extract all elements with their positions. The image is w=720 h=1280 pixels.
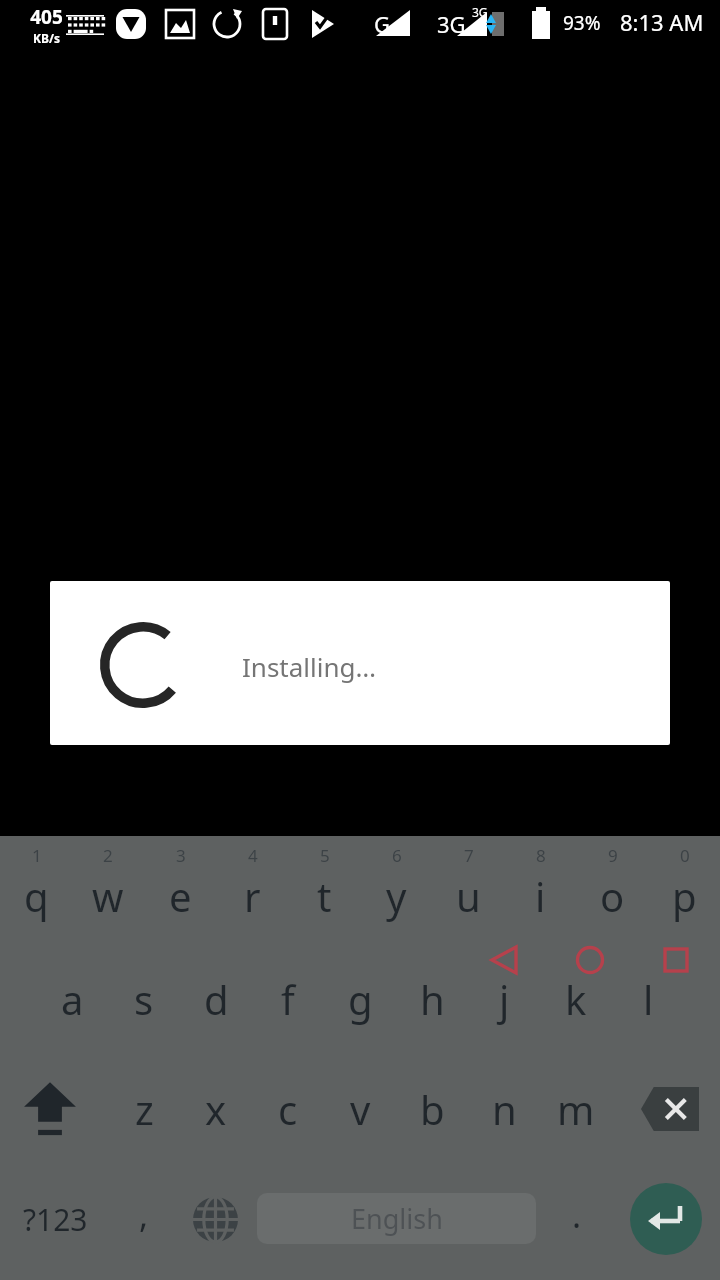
staticText: y <box>386 869 407 923</box>
button[interactable]: h <box>396 944 468 1054</box>
staticText: . <box>572 1192 582 1238</box>
button[interactable]: x <box>180 1054 252 1164</box>
staticText: q <box>24 869 49 923</box>
staticText: G <box>374 9 391 39</box>
staticText: 3G <box>472 4 488 20</box>
staticText: , <box>139 1192 149 1238</box>
staticText: 3 <box>176 844 186 867</box>
button[interactable]: 4 <box>216 836 288 944</box>
button[interactable]: English <box>257 1193 536 1244</box>
staticText: 2 <box>103 844 113 867</box>
staticText: English <box>351 1200 443 1237</box>
staticText: u <box>456 869 481 923</box>
staticText: m <box>557 1082 595 1136</box>
button[interactable]: c <box>252 1054 324 1164</box>
staticText: h <box>420 972 445 1026</box>
button[interactable]: f <box>252 944 324 1054</box>
staticText: v <box>350 1082 371 1136</box>
staticText: k <box>565 972 587 1026</box>
button[interactable]: Installing… <box>50 581 670 745</box>
staticText: ?123 <box>23 1199 88 1240</box>
button[interactable]: 6 <box>360 836 432 944</box>
button[interactable]: s <box>108 944 180 1054</box>
staticText: 9 <box>608 844 618 867</box>
button[interactable]: b <box>396 1054 468 1164</box>
staticText: 3G <box>437 9 466 39</box>
button[interactable]: 8 <box>504 836 576 944</box>
staticText: Installing… <box>242 649 377 684</box>
button[interactable]: n <box>468 1054 540 1164</box>
staticText: n <box>492 1082 517 1136</box>
button[interactable]: 1 <box>0 836 72 944</box>
button[interactable]: k <box>540 944 612 1054</box>
staticText: KB/s <box>33 30 60 46</box>
staticText: 8 <box>536 844 546 867</box>
button[interactable]: Change language <box>180 1164 250 1274</box>
staticText: a <box>61 972 84 1026</box>
button[interactable]: m <box>540 1054 612 1164</box>
staticText: l <box>643 972 654 1026</box>
staticText: c <box>278 1082 298 1136</box>
staticText: r <box>244 869 261 923</box>
button[interactable]: Enter <box>612 1164 720 1274</box>
staticText: 1 <box>32 844 42 867</box>
button[interactable]: 9 <box>576 836 648 944</box>
button[interactable]: v <box>324 1054 396 1164</box>
button[interactable]: z <box>108 1054 180 1164</box>
staticText: 93% <box>563 10 601 36</box>
button[interactable]: 3 <box>144 836 216 944</box>
button[interactable]: 0 <box>648 836 720 944</box>
staticText: g <box>348 972 373 1026</box>
button[interactable]: l <box>612 944 684 1054</box>
button[interactable]: Shift <box>0 1054 100 1164</box>
staticText: z <box>135 1082 154 1136</box>
button[interactable]: g <box>324 944 396 1054</box>
staticText: t <box>317 869 332 923</box>
staticText: p <box>672 869 697 923</box>
staticText: o <box>600 869 625 923</box>
staticText: 6 <box>392 844 402 867</box>
staticText: j <box>499 972 510 1026</box>
staticText: w <box>92 869 124 923</box>
button[interactable]: a <box>36 944 108 1054</box>
button[interactable]: 7 <box>432 836 504 944</box>
staticText: e <box>169 869 192 923</box>
button[interactable]: d <box>180 944 252 1054</box>
staticText: 405 <box>30 4 63 30</box>
staticText: 4 <box>248 844 258 867</box>
button[interactable]: Backspace <box>620 1054 720 1164</box>
button[interactable]: 5 <box>288 836 360 944</box>
button[interactable]: j <box>468 944 540 1054</box>
staticText: s <box>134 972 154 1026</box>
staticText: 0 <box>680 844 690 867</box>
staticText: d <box>204 972 229 1026</box>
staticText: 5 <box>320 844 330 867</box>
staticText: f <box>281 972 295 1026</box>
staticText: 7 <box>464 844 474 867</box>
button[interactable]: ?123 <box>0 1164 110 1274</box>
staticText: b <box>420 1082 445 1136</box>
staticText: 8:13 AM <box>620 7 704 37</box>
staticText: x <box>205 1082 227 1136</box>
staticText: i <box>535 869 546 923</box>
button[interactable]: 2 <box>72 836 144 944</box>
button[interactable]: , <box>110 1164 178 1274</box>
